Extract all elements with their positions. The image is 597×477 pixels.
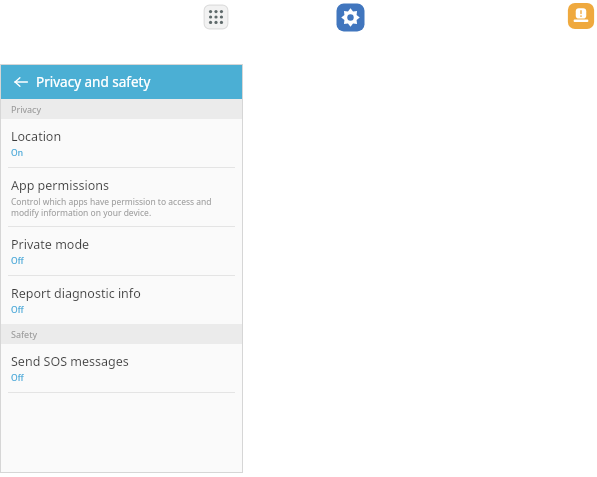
staticText: Off bbox=[11, 304, 24, 316]
staticText: Privacy and safety bbox=[36, 73, 151, 91]
button[interactable]: Settings bbox=[333, 0, 368, 35]
button[interactable]: Private mode bbox=[0, 227, 243, 275]
button[interactable]: Apps bbox=[200, 1, 232, 33]
button[interactable]: Back bbox=[13, 74, 29, 90]
staticText: Off bbox=[11, 255, 24, 267]
staticText: Off bbox=[11, 372, 24, 384]
staticText: App permissions bbox=[11, 177, 109, 194]
button[interactable]: Send SOS messages bbox=[0, 344, 243, 392]
staticText: Report diagnostic info bbox=[11, 285, 141, 302]
staticText: Private mode bbox=[11, 236, 90, 253]
button[interactable]: Location bbox=[0, 119, 243, 167]
button[interactable]: App permissions bbox=[0, 168, 243, 226]
button[interactable]: Emergency SOS bbox=[565, 0, 597, 32]
staticText: Send SOS messages bbox=[11, 353, 129, 370]
staticText: Control which apps have permission to ac… bbox=[11, 196, 212, 218]
staticText: Location bbox=[11, 128, 62, 145]
button[interactable]: Back bbox=[0, 64, 243, 99]
staticText: Privacy bbox=[11, 103, 42, 115]
staticText: On bbox=[11, 147, 23, 159]
button[interactable]: Report diagnostic info bbox=[0, 276, 243, 324]
staticText: Safety bbox=[11, 328, 38, 340]
